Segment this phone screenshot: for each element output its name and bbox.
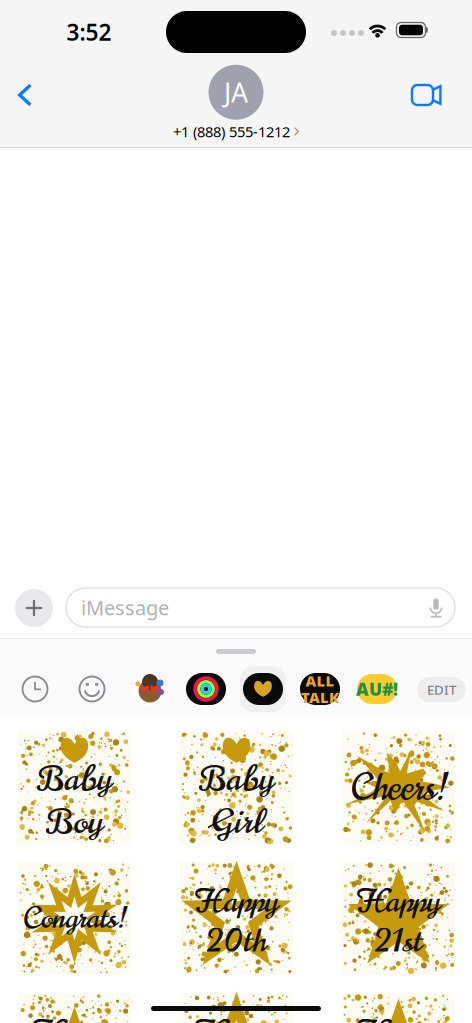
staticText: Baby xyxy=(198,754,274,803)
button[interactable]: Happy 40th sticker xyxy=(180,993,293,1023)
staticText: TALK xyxy=(301,687,339,707)
button[interactable]: Fitness xyxy=(183,666,229,712)
button[interactable]: EDIT xyxy=(417,677,466,702)
button[interactable]: Happy 21st sticker xyxy=(342,862,455,975)
button[interactable]: Apps xyxy=(15,589,53,627)
button[interactable]: Memoji xyxy=(126,666,172,712)
staticText: 3:52 xyxy=(66,17,111,47)
button[interactable]: Celebration stickers xyxy=(240,666,286,712)
button[interactable]: Happy 30th sticker xyxy=(18,993,131,1023)
staticText: Congrats! xyxy=(23,898,126,939)
button[interactable]: FaceTime xyxy=(404,72,450,118)
staticText: Boy xyxy=(45,798,103,846)
button[interactable]: Congrats! sticker xyxy=(18,862,131,975)
button[interactable]: AU xyxy=(354,666,400,712)
staticText: Happy xyxy=(33,1010,116,1023)
button[interactable]: Happy 20th sticker xyxy=(180,862,293,975)
staticText: 21st xyxy=(374,919,422,964)
staticText: AU#! xyxy=(356,677,398,700)
button[interactable]: Baby Boy sticker xyxy=(18,731,131,844)
staticText: Happy xyxy=(195,1010,278,1023)
button[interactable]: iMessage text field xyxy=(66,588,455,627)
staticText: JA xyxy=(224,75,248,110)
staticText: Happy xyxy=(357,1010,440,1023)
staticText: iMessage xyxy=(81,594,169,621)
staticText: Girl xyxy=(209,798,263,846)
button[interactable]: Baby Girl sticker xyxy=(180,731,293,844)
staticText: Cheers! xyxy=(350,762,446,813)
button[interactable]: Cheers! sticker xyxy=(342,731,455,844)
button[interactable]: Back xyxy=(2,72,48,118)
staticText: Happy xyxy=(357,879,440,924)
staticText: ALL xyxy=(305,671,334,690)
staticText: EDIT xyxy=(427,681,456,698)
staticText: 20th xyxy=(206,919,266,964)
button[interactable]: Conversation details, +1 (888) 555-1212 xyxy=(160,63,312,143)
staticText: +1 (888) 555-1212 xyxy=(173,122,290,141)
button[interactable]: All Talk xyxy=(297,666,343,712)
button[interactable]: Recents xyxy=(12,666,58,712)
button[interactable]: Happy 50th sticker xyxy=(342,993,455,1023)
button[interactable]: Emoji xyxy=(69,666,115,712)
staticText: Baby xyxy=(36,754,112,803)
staticText: Happy xyxy=(195,879,278,924)
